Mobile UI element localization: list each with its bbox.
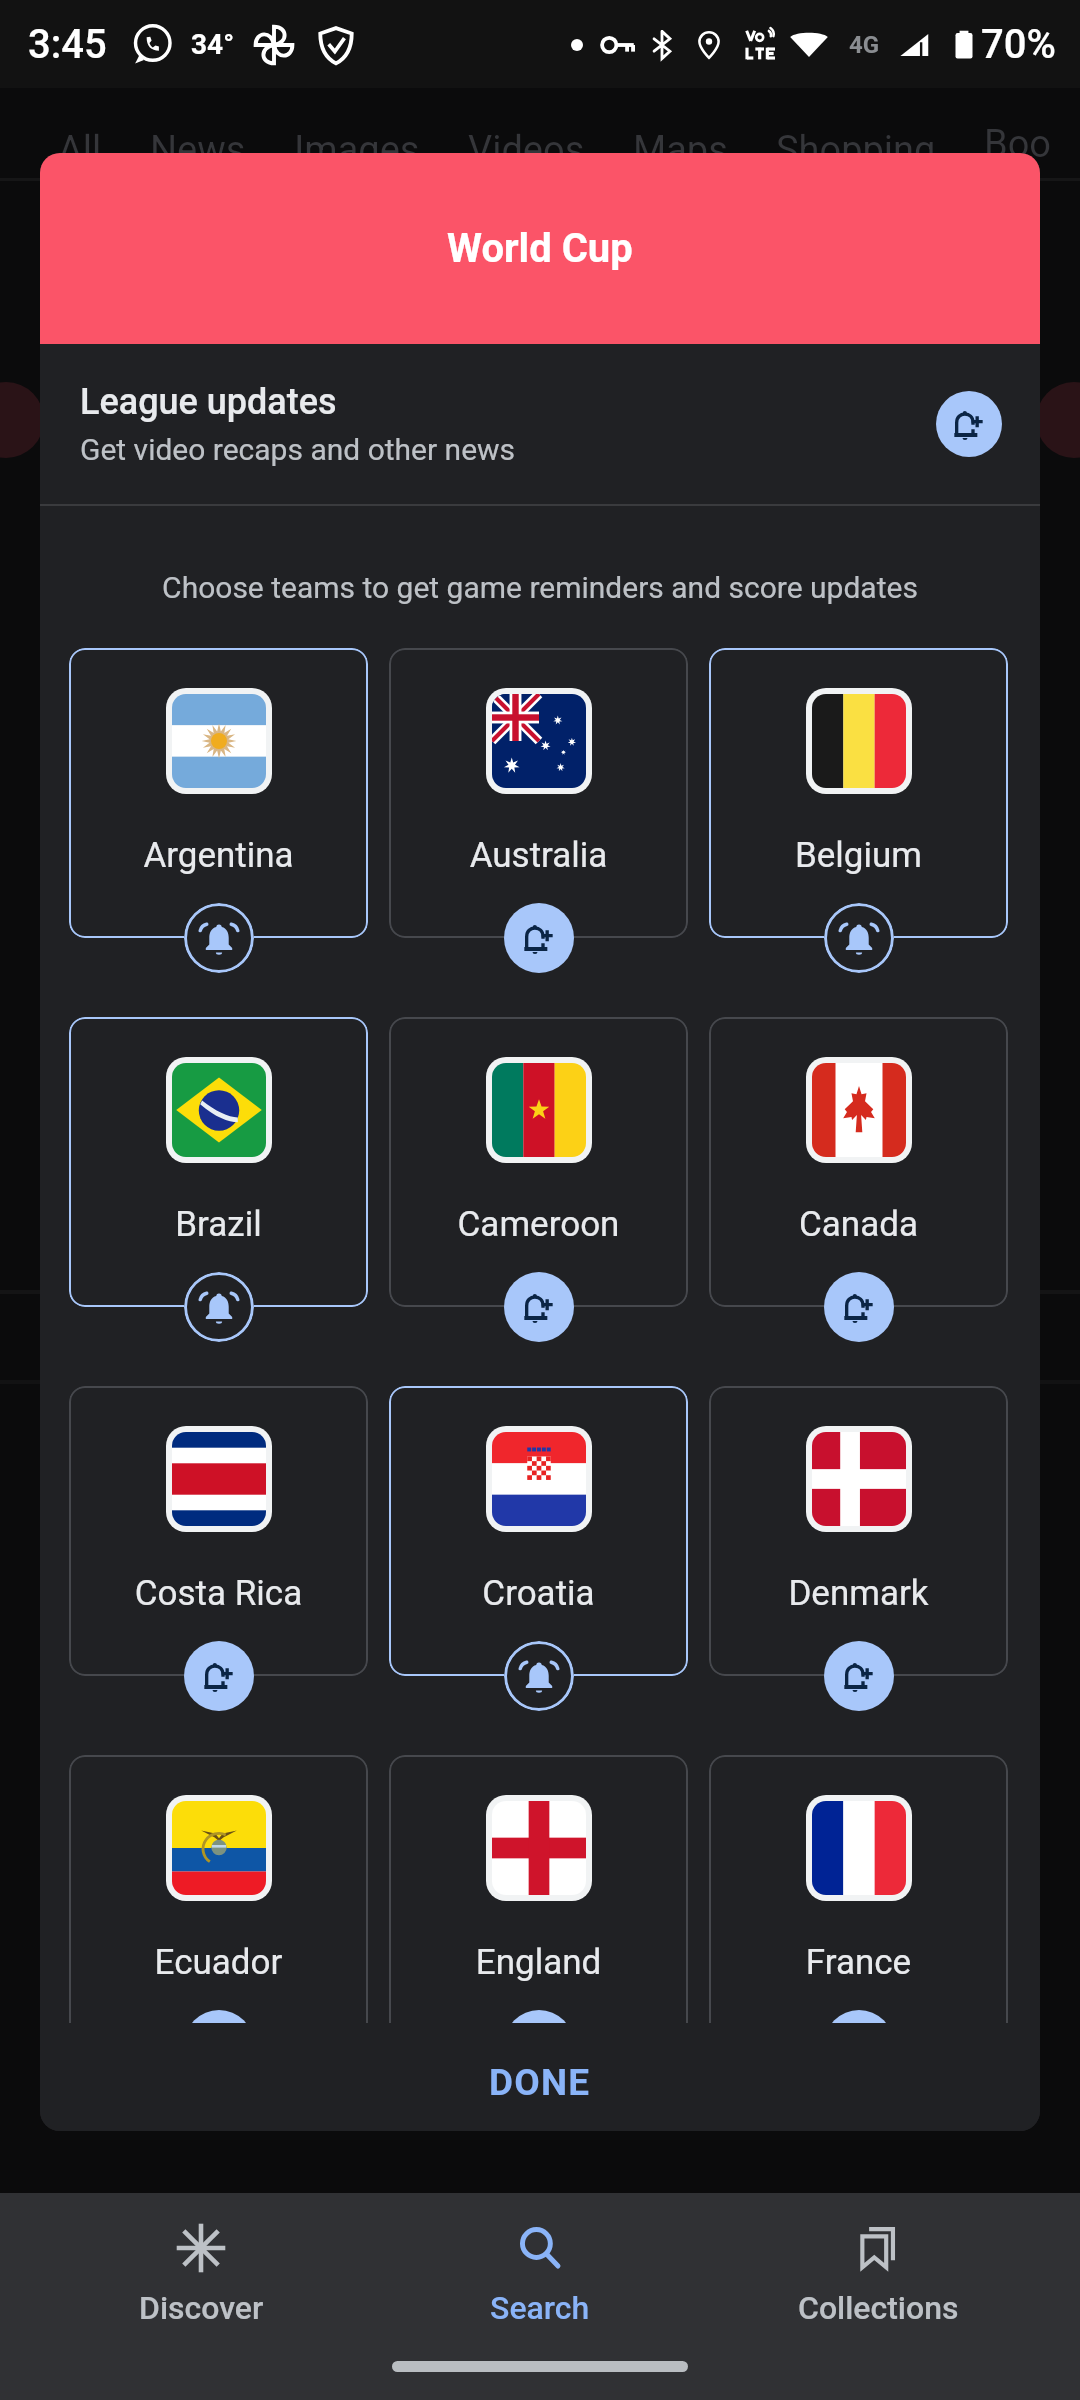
staticText: Get video recaps and other news [80,432,516,467]
staticText: World Cup [447,225,633,272]
staticText: Choose teams to get game reminders and s… [40,570,1040,605]
staticText: Denmark [709,1573,1008,1614]
staticText: Ecuador [69,1942,368,1983]
staticText: Discover [139,2289,264,2327]
staticText: Costa Rica [69,1573,368,1614]
staticText: Croatia [389,1573,688,1614]
button[interactable]: Notifications for Denmark [824,1641,894,1711]
staticText: 70% [981,21,1056,68]
button[interactable]: Notifications for Cameroon [504,1272,574,1342]
button[interactable]: Ecuador [69,1755,368,2045]
staticText: All [58,128,102,173]
button[interactable]: Notifications for Brazil [184,1272,254,1342]
staticText: Images [294,128,420,173]
staticText: France [709,1942,1008,1983]
staticText: Videos [468,128,585,173]
staticText: Books [984,122,1056,178]
button[interactable]: Search [370,2213,709,2335]
staticText: League updates [80,381,337,423]
button[interactable]: Notifications for Costa Rica [184,1641,254,1711]
staticText: Brazil [69,1204,368,1245]
button[interactable]: Denmark [709,1386,1008,1676]
button[interactable]: Notifications for Argentina [184,903,254,973]
button[interactable]: France [709,1755,1008,2045]
button[interactable]: Canada [709,1017,1008,1307]
button[interactable]: Notifications for England [504,2010,574,2080]
button[interactable]: Brazil [69,1017,368,1307]
staticText: Shopping [776,128,936,173]
button[interactable]: Notifications for Australia [504,903,574,973]
button[interactable]: Notifications for Croatia [504,1641,574,1711]
staticText: News [150,128,246,173]
button[interactable]: Cameroon [389,1017,688,1307]
button[interactable]: Australia [389,648,688,938]
button[interactable]: League updates [40,344,1040,504]
staticText: England [389,1942,688,1983]
button[interactable]: Notifications for Ecuador [184,2010,254,2080]
button[interactable]: Notifications for Belgium [824,903,894,973]
button[interactable]: England [389,1755,688,2045]
staticText: DONE [489,2061,591,2104]
button[interactable]: DONE [40,2023,1040,2131]
staticText: 4G [849,31,880,59]
button[interactable]: Collections [709,2213,1048,2335]
button[interactable]: Croatia [389,1386,688,1676]
button[interactable]: Notifications for Canada [824,1272,894,1342]
staticText: Search [490,2289,590,2327]
staticText: 34° [191,28,235,61]
staticText: Cameroon [389,1204,688,1245]
staticText: 3:45 [28,21,107,68]
staticText: Canada [709,1204,1008,1245]
button[interactable]: Discover [32,2213,370,2335]
staticText: Collections [798,2289,959,2327]
button[interactable]: Costa Rica [69,1386,368,1676]
button[interactable]: Notifications for France [824,2010,894,2080]
staticText: Maps [633,128,728,173]
button[interactable]: Argentina [69,648,368,938]
staticText: Australia [389,835,688,876]
button[interactable]: Belgium [709,648,1008,938]
button[interactable]: Add league updates notification [936,391,1002,457]
staticText: Argentina [69,835,368,876]
staticText: Belgium [709,835,1008,876]
